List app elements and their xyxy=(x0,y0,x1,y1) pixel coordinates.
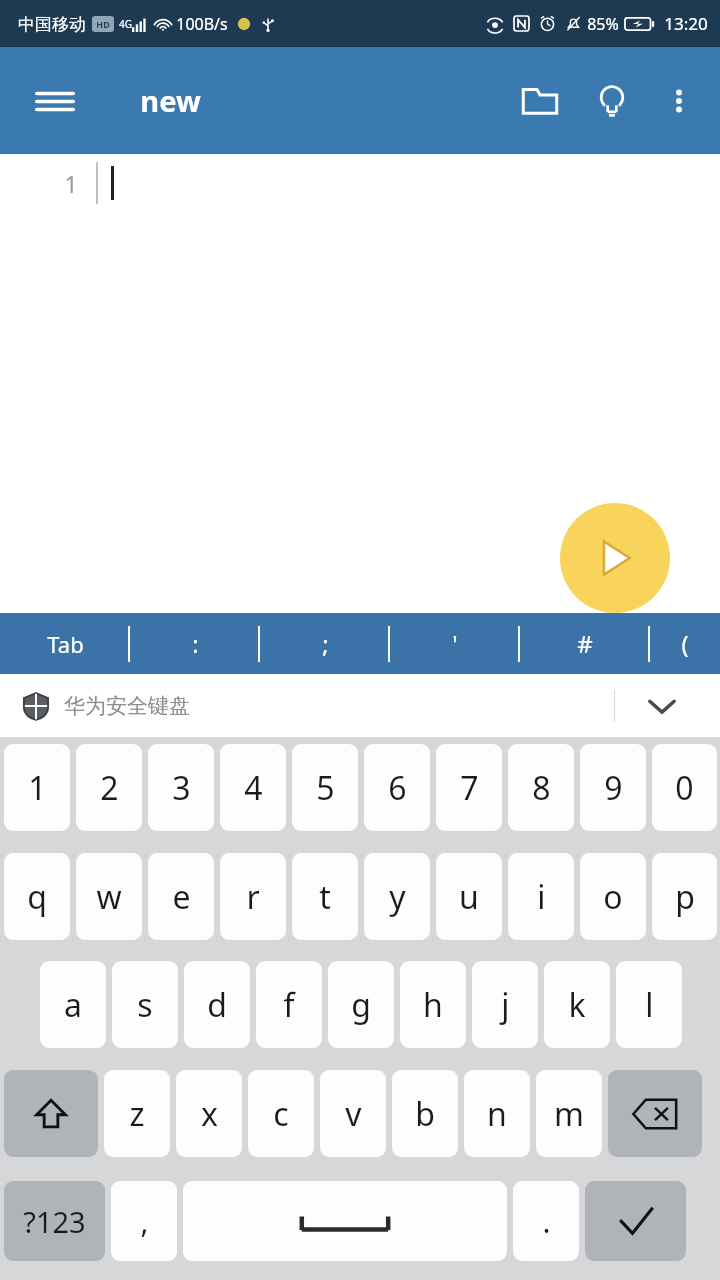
button[interactable]: z xyxy=(104,1070,170,1157)
button[interactable]: t xyxy=(292,853,358,940)
button[interactable]: a xyxy=(40,961,106,1048)
staticText: n xyxy=(487,1092,507,1136)
button[interactable]: 1 xyxy=(4,744,70,831)
staticText: 6 xyxy=(388,766,407,810)
button[interactable]: v xyxy=(320,1070,386,1157)
button[interactable]: ( xyxy=(650,613,720,674)
button[interactable]: d xyxy=(184,961,250,1048)
button[interactable]: 0 xyxy=(652,744,717,831)
button[interactable]: 8 xyxy=(508,744,574,831)
staticText: u xyxy=(459,875,479,919)
button[interactable]: 7 xyxy=(436,744,502,831)
staticText: a xyxy=(64,983,82,1027)
staticText: g xyxy=(351,983,371,1027)
button[interactable]: 6 xyxy=(364,744,430,831)
button[interactable]: y xyxy=(364,853,430,940)
button[interactable]: Backspace xyxy=(608,1070,702,1157)
button[interactable]: u xyxy=(436,853,502,940)
button[interactable]: Run xyxy=(560,503,670,613)
staticText: l xyxy=(645,983,654,1027)
staticText: 1 xyxy=(64,168,78,199)
staticText: f xyxy=(283,983,295,1027)
staticText: 4G xyxy=(119,17,132,31)
button[interactable]: 4 xyxy=(220,744,286,831)
button[interactable] xyxy=(183,1181,507,1261)
button[interactable]: More options xyxy=(648,70,710,132)
button[interactable]: : xyxy=(130,613,260,674)
staticText: b xyxy=(415,1092,435,1136)
staticText: 85% xyxy=(587,13,619,35)
staticText: 13:20 xyxy=(664,12,708,35)
staticText: s xyxy=(137,983,153,1027)
staticText: # xyxy=(577,627,593,660)
staticText: q xyxy=(27,875,47,919)
staticText: i xyxy=(537,875,546,919)
staticText: , xyxy=(140,1201,149,1242)
staticText: ' xyxy=(452,627,458,660)
staticText: 8 xyxy=(532,766,551,810)
button[interactable]: w xyxy=(76,853,142,940)
button[interactable]: p xyxy=(652,853,717,940)
button[interactable]: Tab xyxy=(0,613,130,674)
button[interactable]: 5 xyxy=(292,744,358,831)
button[interactable]: 2 xyxy=(76,744,142,831)
button[interactable]: l xyxy=(616,961,682,1048)
staticText: z xyxy=(129,1092,145,1136)
button[interactable]: j xyxy=(472,961,538,1048)
staticText: 中国移动 xyxy=(18,14,86,35)
button[interactable]: i xyxy=(508,853,574,940)
button[interactable]: # xyxy=(520,613,650,674)
staticText: Tab xyxy=(47,629,84,659)
staticText: c xyxy=(273,1092,289,1136)
staticText: m xyxy=(554,1092,584,1136)
staticText: 100B/s xyxy=(176,13,228,35)
button[interactable]: b xyxy=(392,1070,458,1157)
button[interactable]: q xyxy=(4,853,70,940)
button[interactable]: Shift xyxy=(4,1070,98,1157)
button[interactable]: n xyxy=(464,1070,530,1157)
button[interactable]: s xyxy=(112,961,178,1048)
button[interactable]: . xyxy=(513,1181,579,1261)
staticText: 3 xyxy=(172,766,191,810)
staticText: 7 xyxy=(460,766,479,810)
button[interactable]: Hide keyboard xyxy=(634,678,690,734)
staticText: t xyxy=(319,875,331,919)
staticText: ; xyxy=(322,627,329,660)
button[interactable]: o xyxy=(580,853,646,940)
button[interactable]: k xyxy=(544,961,610,1048)
staticText: ?123 xyxy=(23,1202,86,1241)
button[interactable]: 3 xyxy=(148,744,214,831)
button[interactable]: Enter xyxy=(585,1181,686,1261)
button[interactable]: c xyxy=(248,1070,314,1157)
staticText: y xyxy=(389,875,406,919)
staticText: p xyxy=(675,875,695,919)
button[interactable]: x xyxy=(176,1070,242,1157)
button[interactable]: h xyxy=(400,961,466,1048)
staticText: 4 xyxy=(244,766,263,810)
button[interactable]: Open file xyxy=(504,65,576,137)
button[interactable]: r xyxy=(220,853,286,940)
staticText: h xyxy=(423,983,443,1027)
staticText: 0 xyxy=(675,766,694,810)
button[interactable]: f xyxy=(256,961,322,1048)
staticText: o xyxy=(603,875,623,919)
button[interactable]: ' xyxy=(390,613,520,674)
staticText: . xyxy=(542,1201,551,1242)
staticText: new xyxy=(140,81,201,120)
staticText: v xyxy=(345,1092,362,1136)
staticText: : xyxy=(192,627,199,660)
button[interactable]: g xyxy=(328,961,394,1048)
button[interactable]: 9 xyxy=(580,744,646,831)
button[interactable]: m xyxy=(536,1070,602,1157)
button[interactable]: e xyxy=(148,853,214,940)
button[interactable]: , xyxy=(111,1181,177,1261)
staticText: HD xyxy=(96,18,110,30)
button[interactable]: Tips xyxy=(576,65,648,137)
button[interactable]: Open navigation menu xyxy=(18,64,92,138)
staticText: w xyxy=(96,875,122,919)
button[interactable]: ?123 xyxy=(4,1181,105,1261)
staticText: 9 xyxy=(604,766,623,810)
button[interactable]: ; xyxy=(260,613,390,674)
staticText: j xyxy=(501,983,510,1027)
staticText: 华为安全键盘 xyxy=(64,693,190,719)
